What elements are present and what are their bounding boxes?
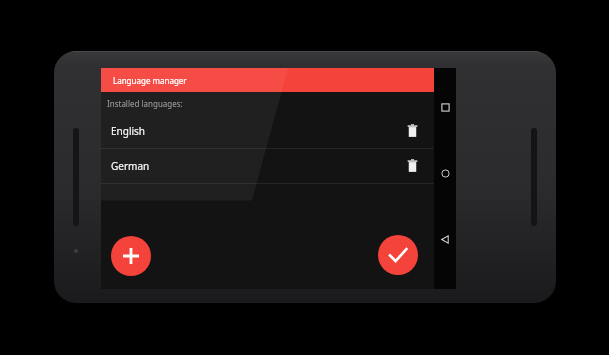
staticText: German [111,159,403,173]
button[interactable]: Delete German [403,157,421,175]
button[interactable]: Delete English [403,122,421,140]
button[interactable]: English [101,114,434,148]
button[interactable]: Confirm [378,235,418,275]
button[interactable]: Recents [436,98,454,116]
staticText: Installed languages: [107,98,183,109]
button[interactable]: Back [436,230,454,248]
button[interactable]: Add language [111,236,151,276]
button[interactable]: German [101,149,434,183]
staticText: Language manager [113,75,187,86]
button[interactable]: Home [436,164,454,182]
staticText: English [111,124,403,138]
